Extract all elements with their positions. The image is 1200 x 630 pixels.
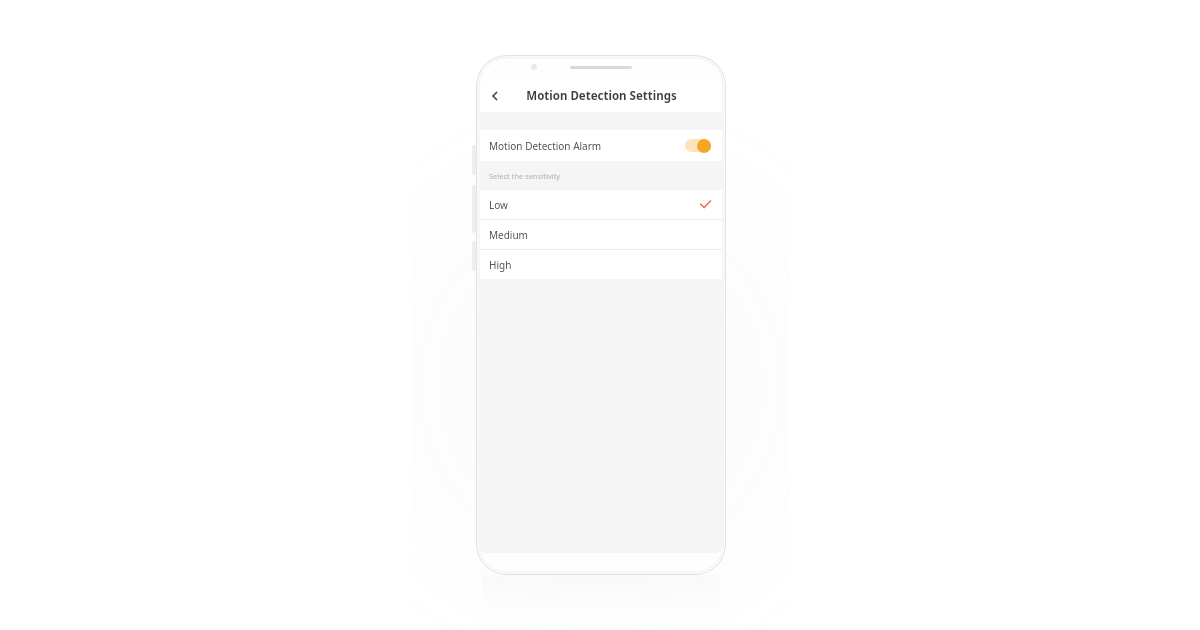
button[interactable]: Back [480,80,510,112]
staticText: High [489,258,512,272]
staticText: Low [489,198,508,212]
staticText: Select the sensitivity [489,171,561,181]
button[interactable]: Motion Detection Alarm toggle [684,138,711,153]
button[interactable]: Low [480,190,722,219]
staticText: Medium [489,228,528,242]
staticText: Motion Detection Alarm [489,139,602,153]
button[interactable]: Medium [480,220,722,249]
staticText: Motion Detection Settings [526,88,677,104]
button[interactable]: High [480,250,722,279]
button[interactable]: Motion Detection Alarm [480,130,722,161]
